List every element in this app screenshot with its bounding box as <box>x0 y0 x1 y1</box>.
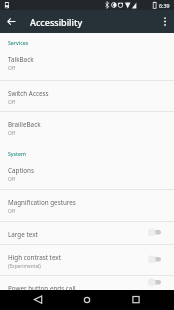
staticText: System <box>8 150 26 157</box>
button[interactable]: Switch Access <box>0 81 174 111</box>
staticText: (Experimental) <box>8 263 41 270</box>
staticText: Off <box>8 208 16 215</box>
staticText: Large text <box>8 230 38 239</box>
staticText: Captions <box>8 166 34 175</box>
staticText: Off <box>8 130 16 137</box>
staticText: High contrast text <box>8 253 61 262</box>
staticText: Off <box>8 65 16 72</box>
button[interactable]: Captions <box>0 158 174 189</box>
staticText: Magnification gestures <box>8 198 76 207</box>
button[interactable]: Large text <box>0 222 174 244</box>
button[interactable]: High contrast text <box>0 245 174 275</box>
staticText: Off <box>8 176 16 183</box>
button[interactable]: Magnification gestures <box>0 190 174 221</box>
staticText: 6:39 <box>159 2 170 9</box>
staticText: Power button ends call <box>8 284 76 293</box>
button[interactable]: More options <box>156 10 174 33</box>
button[interactable]: Power button ends call <box>0 276 174 290</box>
button[interactable]: BrailleBack <box>0 112 174 144</box>
staticText: Switch Access <box>8 89 49 98</box>
staticText: TalkBack <box>8 55 34 64</box>
staticText: Accessibility <box>30 16 83 28</box>
button[interactable]: Recent apps <box>119 290 153 310</box>
staticText: Services <box>8 39 29 46</box>
staticText: BrailleBack <box>8 120 41 129</box>
button[interactable]: Back <box>21 290 55 310</box>
button[interactable]: Navigate up <box>0 10 23 33</box>
staticText: Off <box>8 99 16 106</box>
button[interactable]: Home <box>70 290 104 310</box>
button[interactable]: TalkBack <box>0 47 174 80</box>
